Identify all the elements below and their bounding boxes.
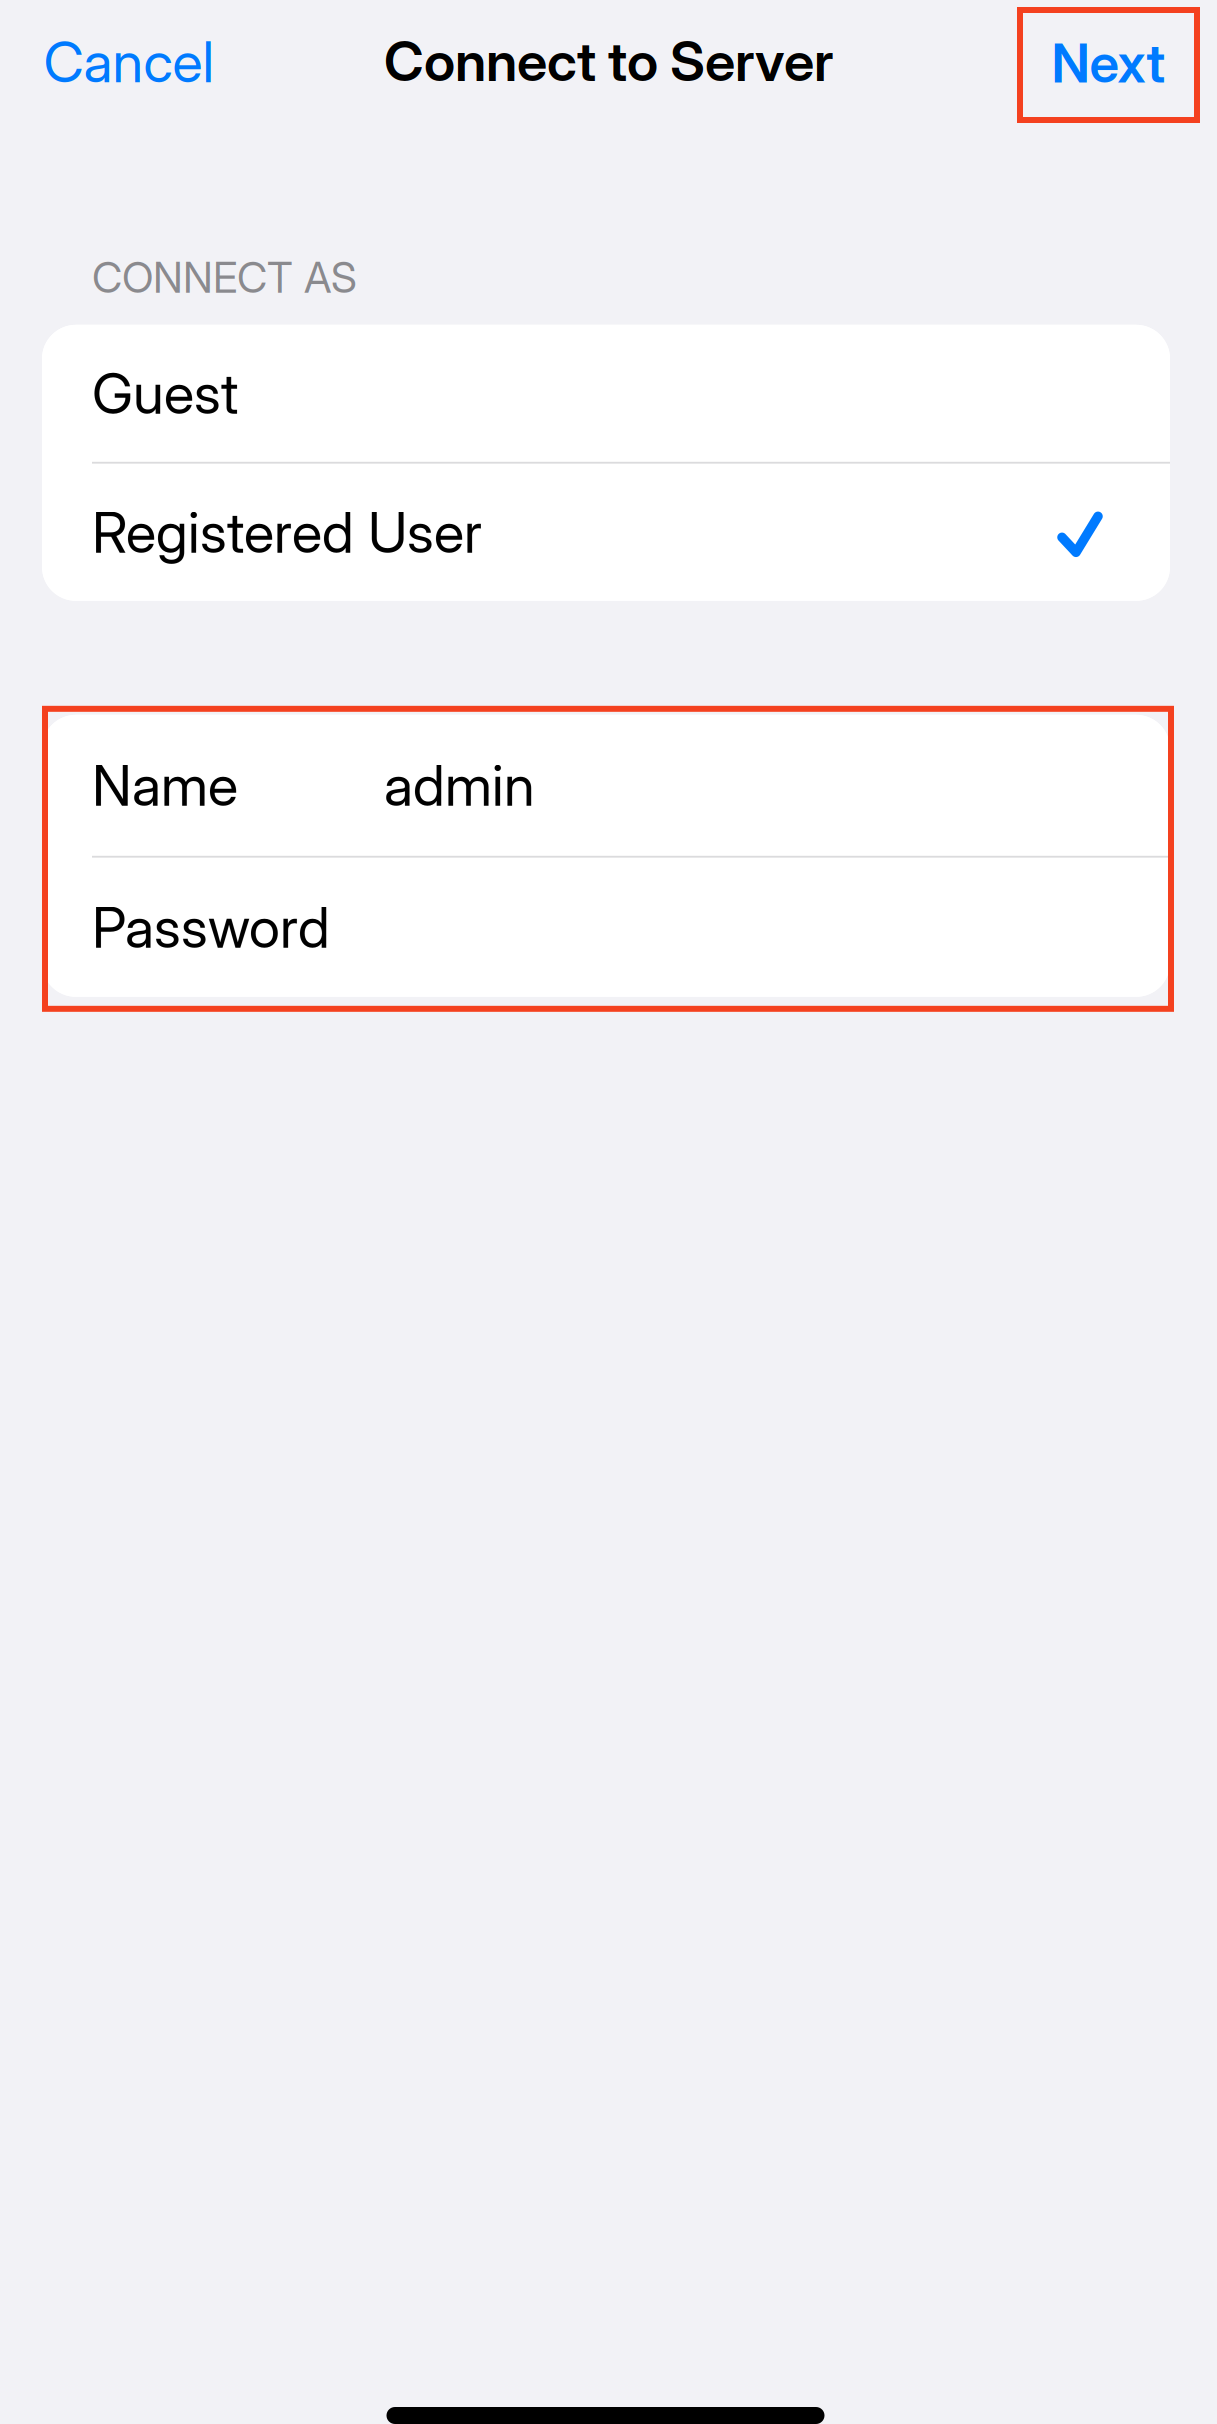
staticText: Registered User bbox=[92, 498, 482, 566]
staticText: CONNECT AS bbox=[92, 252, 357, 303]
button[interactable]: Password bbox=[42, 858, 1170, 997]
staticText: admin bbox=[384, 751, 535, 819]
staticText: Next bbox=[1051, 31, 1165, 95]
staticText: Password bbox=[92, 893, 330, 961]
button[interactable]: Guest bbox=[42, 325, 1170, 462]
button[interactable]: Name bbox=[42, 715, 1170, 856]
staticText: Guest bbox=[92, 359, 238, 427]
staticText: Connect to Server bbox=[384, 28, 833, 94]
button[interactable]: Cancel bbox=[41, 10, 217, 120]
button[interactable]: Registered User bbox=[42, 464, 1170, 601]
staticText: Name bbox=[92, 751, 238, 819]
staticText: Cancel bbox=[43, 28, 214, 96]
button[interactable]: Next bbox=[1020, 10, 1197, 120]
